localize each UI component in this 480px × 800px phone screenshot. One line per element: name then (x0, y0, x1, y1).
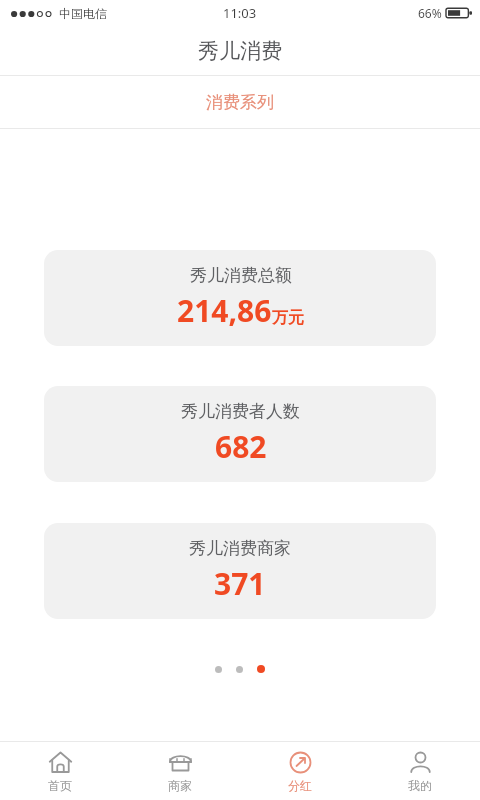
staticText: 秀儿消费者人数 (181, 401, 300, 422)
staticText: 商家 (168, 778, 192, 793)
button[interactable]: 秀儿消费总额 (44, 250, 436, 346)
staticText: 秀儿消费商家 (189, 538, 291, 559)
button[interactable]: 商家 (120, 742, 240, 800)
staticText: 秀儿消费 (198, 38, 282, 64)
staticText: 66% (418, 5, 442, 21)
button[interactable]: 秀儿消费者人数 (44, 386, 436, 482)
staticText: 分红 (288, 778, 312, 793)
staticText: 214,86 (177, 290, 272, 331)
button[interactable]: 消费系列 (0, 76, 480, 128)
staticText: 682 (215, 426, 267, 467)
staticText: 万元 (272, 308, 304, 328)
staticText: 首页 (48, 778, 72, 793)
button[interactable]: 首页 (0, 742, 120, 800)
staticText: 消费系列 (206, 92, 274, 113)
staticText: 我的 (408, 778, 432, 793)
button[interactable]: 秀儿消费商家 (44, 523, 436, 619)
staticText: 秀儿消费总额 (190, 265, 292, 286)
staticText: 11:03 (223, 4, 257, 22)
button[interactable]: 我的 (360, 742, 480, 800)
staticText: 中国电信 (59, 6, 107, 21)
button[interactable]: 分红 (240, 742, 360, 800)
staticText: 371 (214, 563, 266, 604)
